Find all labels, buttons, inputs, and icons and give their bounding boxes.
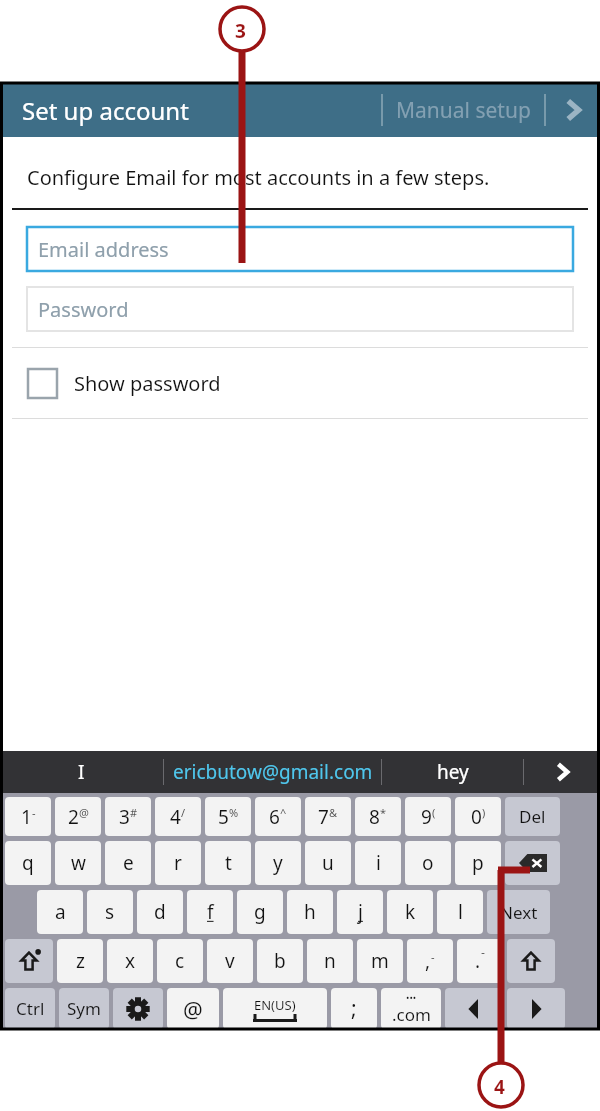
staticText: @ (183, 994, 203, 1024)
button[interactable]: q (5, 841, 51, 885)
staticText: 8 (369, 804, 380, 830)
staticText: ericbutow@gmail.com (173, 759, 373, 785)
staticText: k (405, 899, 416, 925)
staticText: Password (38, 296, 129, 323)
button[interactable]: a (37, 890, 83, 934)
button[interactable]: g (237, 890, 283, 934)
button[interactable]: , (407, 939, 453, 983)
button[interactable]: t (205, 841, 251, 885)
button[interactable]: b (257, 939, 303, 983)
button[interactable]: Password (27, 287, 573, 331)
button[interactable]: s (87, 890, 133, 934)
staticText: Show password (74, 370, 221, 397)
button[interactable]: j (337, 890, 383, 934)
button[interactable]: d (137, 890, 183, 934)
button[interactable]: y (255, 841, 301, 885)
button[interactable]: Settings (113, 988, 163, 1029)
button[interactable]: ; (331, 988, 377, 1029)
button[interactable]: Left (445, 988, 503, 1029)
button[interactable]: i (355, 841, 401, 885)
button[interactable]: x (107, 939, 153, 983)
button[interactable]: I (0, 751, 163, 793)
button[interactable]: h (287, 890, 333, 934)
button[interactable]: z (57, 939, 103, 983)
staticText: / (181, 805, 186, 820)
button[interactable]: Shift (5, 939, 53, 983)
staticText: ) (482, 805, 486, 820)
button[interactable]: Sym (59, 988, 109, 1029)
staticText: Del (519, 805, 546, 828)
staticText: Configure Email for most accounts in a f… (27, 164, 490, 191)
staticText: & (329, 805, 338, 820)
staticText: g (254, 899, 266, 925)
button[interactable]: 5 (205, 797, 251, 836)
staticText: 9 (421, 804, 432, 830)
staticText: y (273, 850, 283, 876)
button[interactable]: w (55, 841, 101, 885)
button[interactable]: v (207, 939, 253, 983)
button[interactable]: ericbutow@gmail.com (164, 751, 381, 793)
button[interactable]: Show password (0, 348, 600, 418)
staticText: Ctrl (16, 997, 45, 1020)
button[interactable]: 9 (405, 797, 451, 836)
staticText: Set up account (22, 94, 189, 127)
button[interactable]: Next (487, 890, 550, 934)
button[interactable]: 1 (5, 797, 51, 836)
staticText: 4 (170, 804, 181, 830)
staticText: hey (437, 759, 469, 785)
button[interactable]: Ctrl (5, 988, 55, 1029)
button[interactable]: Set up account (0, 90, 197, 131)
button[interactable]: Shift (507, 939, 555, 983)
button[interactable]: ••• (381, 988, 441, 1029)
staticText: o (422, 850, 434, 876)
button[interactable]: Manual setup (383, 88, 544, 133)
button[interactable]: n (307, 939, 353, 983)
staticText: Manual setup (396, 96, 531, 125)
button[interactable]: hey (382, 751, 523, 793)
staticText: c (175, 948, 185, 974)
button[interactable]: Del (505, 797, 560, 836)
staticText: 0 (471, 804, 482, 830)
button[interactable]: Right (507, 988, 565, 1029)
button[interactable]: l (437, 890, 483, 934)
button[interactable]: 3 (105, 797, 151, 836)
staticText: * (380, 805, 387, 820)
button[interactable]: . (457, 939, 503, 983)
button[interactable]: More suggestions (524, 751, 600, 793)
button[interactable]: Backspace (505, 841, 560, 885)
button[interactable]: 2 (55, 797, 101, 836)
staticText: .com (392, 1003, 431, 1026)
button[interactable]: m (357, 939, 403, 983)
button[interactable]: Email address (27, 227, 573, 271)
staticText: v (225, 948, 235, 974)
staticText: # (130, 805, 138, 820)
staticText: w (71, 850, 86, 876)
button[interactable]: f (187, 890, 233, 934)
staticText: 3 (235, 18, 246, 44)
staticText: . (475, 948, 481, 974)
button[interactable]: r (155, 841, 201, 885)
staticText: h (304, 899, 316, 925)
staticText: Next (500, 901, 538, 924)
button[interactable]: o (405, 841, 451, 885)
button[interactable]: 6 (255, 797, 301, 836)
button[interactable]: 4 (155, 797, 201, 836)
staticText: b (274, 948, 286, 974)
button[interactable]: u (305, 841, 351, 885)
button[interactable]: k (387, 890, 433, 934)
staticText: ••• (406, 991, 417, 1003)
button[interactable]: @ (167, 988, 219, 1029)
button[interactable]: p (455, 841, 501, 885)
button[interactable]: Next (546, 83, 600, 137)
staticText: 6 (269, 804, 280, 830)
staticText: @ (79, 805, 89, 820)
button[interactable]: 0 (455, 797, 501, 836)
staticText: Email address (38, 236, 169, 263)
button[interactable]: 8 (355, 797, 401, 836)
staticText: r (174, 850, 182, 876)
staticText: j (358, 899, 363, 925)
button[interactable]: Space (223, 988, 327, 1029)
button[interactable]: 7 (305, 797, 351, 836)
button[interactable]: c (157, 939, 203, 983)
button[interactable]: e (105, 841, 151, 885)
